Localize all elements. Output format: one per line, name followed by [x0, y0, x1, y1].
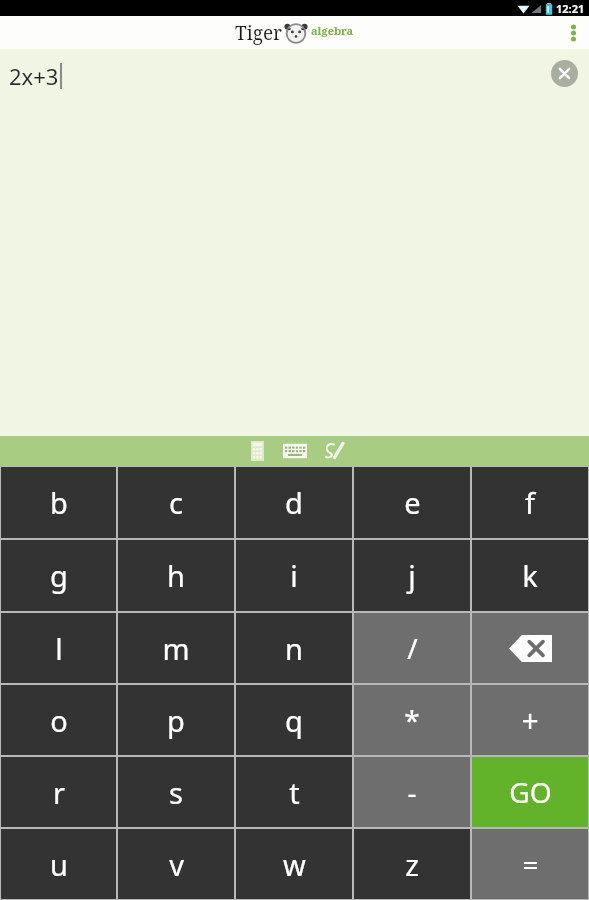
- button[interactable]: c: [118, 467, 234, 538]
- button[interactable]: Clear: [551, 60, 578, 87]
- button[interactable]: -: [354, 757, 470, 827]
- button[interactable]: Calculator keypad: [238, 436, 276, 466]
- staticText: u: [50, 845, 68, 884]
- staticText: v: [169, 845, 184, 884]
- staticText: d: [285, 483, 303, 522]
- button[interactable]: r: [1, 757, 116, 827]
- staticText: p: [167, 701, 185, 740]
- button[interactable]: l: [1, 613, 116, 683]
- staticText: i: [290, 556, 298, 595]
- staticText: /: [407, 629, 418, 667]
- staticText: c: [169, 483, 183, 522]
- staticText: k: [522, 556, 538, 595]
- button[interactable]: o: [1, 685, 116, 755]
- button[interactable]: h: [118, 540, 234, 611]
- staticText: g: [50, 556, 68, 595]
- staticText: n: [285, 629, 303, 668]
- staticText: l: [55, 629, 63, 668]
- button[interactable]: v: [118, 829, 234, 899]
- staticText: -: [407, 773, 417, 811]
- staticText: e: [404, 483, 421, 522]
- button[interactable]: q: [236, 685, 352, 755]
- staticText: 12:21: [556, 1, 585, 16]
- button[interactable]: Handwriting: [314, 436, 352, 466]
- button[interactable]: More options: [557, 16, 589, 49]
- button[interactable]: Backspace: [472, 613, 588, 683]
- staticText: j: [408, 556, 416, 595]
- staticText: algebra: [311, 23, 354, 38]
- staticText: z: [405, 845, 419, 884]
- button[interactable]: t: [236, 757, 352, 827]
- button[interactable]: z: [354, 829, 470, 899]
- button[interactable]: e: [354, 467, 470, 538]
- staticText: h: [167, 556, 185, 595]
- staticText: GO: [509, 773, 552, 811]
- staticText: 2x+3: [9, 61, 59, 91]
- button[interactable]: Keyboard: [276, 436, 314, 466]
- staticText: =: [522, 845, 539, 883]
- staticText: *: [404, 701, 420, 739]
- button[interactable]: GO: [472, 757, 588, 827]
- button[interactable]: s: [118, 757, 234, 827]
- button[interactable]: *: [354, 685, 470, 755]
- staticText: o: [50, 701, 68, 740]
- button[interactable]: w: [236, 829, 352, 899]
- button[interactable]: k: [472, 540, 588, 611]
- button[interactable]: p: [118, 685, 234, 755]
- button[interactable]: +: [472, 685, 588, 755]
- button[interactable]: u: [1, 829, 116, 899]
- staticText: r: [53, 773, 65, 812]
- button[interactable]: m: [118, 613, 234, 683]
- staticText: Tiger: [235, 20, 283, 46]
- button[interactable]: b: [1, 467, 116, 538]
- button[interactable]: j: [354, 540, 470, 611]
- staticText: +: [521, 700, 539, 741]
- button[interactable]: =: [472, 829, 588, 899]
- button[interactable]: g: [1, 540, 116, 611]
- staticText: s: [169, 773, 183, 812]
- staticText: t: [289, 773, 300, 812]
- button[interactable]: f: [472, 467, 588, 538]
- button[interactable]: n: [236, 613, 352, 683]
- staticText: w: [283, 845, 306, 884]
- button[interactable]: /: [354, 613, 470, 683]
- staticText: b: [50, 483, 68, 522]
- staticText: m: [162, 629, 190, 668]
- button[interactable]: i: [236, 540, 352, 611]
- staticText: q: [285, 701, 303, 740]
- staticText: f: [525, 483, 535, 522]
- button[interactable]: d: [236, 467, 352, 538]
